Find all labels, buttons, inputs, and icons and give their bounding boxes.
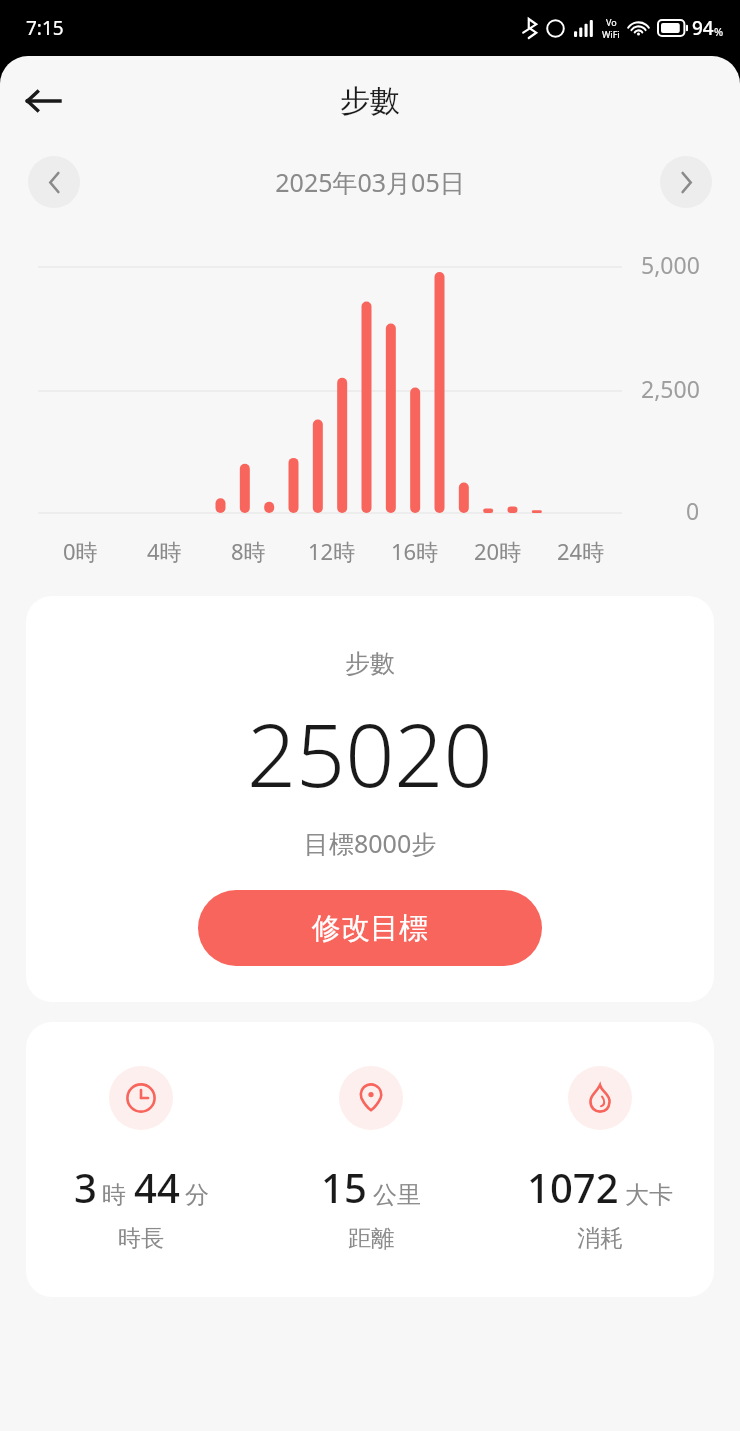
button[interactable]: 時長 xyxy=(26,1066,256,1253)
staticText: 94 xyxy=(692,15,714,41)
staticText: 修改目標 xyxy=(312,910,428,947)
staticText: 目標8000步 xyxy=(304,826,437,860)
button[interactable]: 前一天 xyxy=(28,156,80,208)
staticText: 分 xyxy=(185,1180,209,1210)
other: 時長 xyxy=(109,1066,173,1130)
staticText: 8時 xyxy=(231,536,266,566)
staticText: 12時 xyxy=(308,536,356,566)
button[interactable]: 距離 xyxy=(256,1066,485,1253)
button[interactable]: 後一天 xyxy=(660,156,712,208)
staticText: 5,000 xyxy=(641,249,700,280)
staticText: 0 xyxy=(686,495,700,526)
staticText: % xyxy=(714,24,724,39)
staticText: WiFi xyxy=(602,28,620,40)
staticText: 時 xyxy=(102,1180,126,1210)
staticText: 時長 xyxy=(118,1224,164,1253)
staticText: 25020 xyxy=(247,695,493,812)
staticText: 大卡 xyxy=(625,1180,673,1210)
other: 距離 xyxy=(339,1066,403,1130)
button[interactable]: 消耗 xyxy=(485,1066,714,1253)
staticText: 7:15 xyxy=(26,15,64,41)
staticText: 步數 xyxy=(345,648,395,679)
staticText: 20時 xyxy=(474,536,522,566)
staticText: 15 xyxy=(321,1160,367,1214)
staticText: 2025年03月05日 xyxy=(80,165,660,199)
staticText: 步數 xyxy=(340,82,400,120)
staticText: 距離 xyxy=(348,1224,394,1253)
button[interactable]: 返回 xyxy=(14,72,72,130)
staticText: 24時 xyxy=(557,536,605,566)
staticText: 消耗 xyxy=(577,1224,623,1253)
staticText: 3 xyxy=(74,1160,97,1214)
other: 消耗 xyxy=(568,1066,632,1130)
staticText: 44 xyxy=(134,1160,180,1214)
button[interactable]: 修改目標 xyxy=(198,890,542,966)
staticText: 1072 xyxy=(527,1160,619,1214)
staticText: 16時 xyxy=(391,536,439,566)
staticText: 2,500 xyxy=(641,373,700,404)
staticText: 4時 xyxy=(147,536,182,566)
staticText: 公里 xyxy=(373,1180,421,1210)
staticText: Vo xyxy=(606,16,617,28)
staticText: 0時 xyxy=(63,536,98,566)
